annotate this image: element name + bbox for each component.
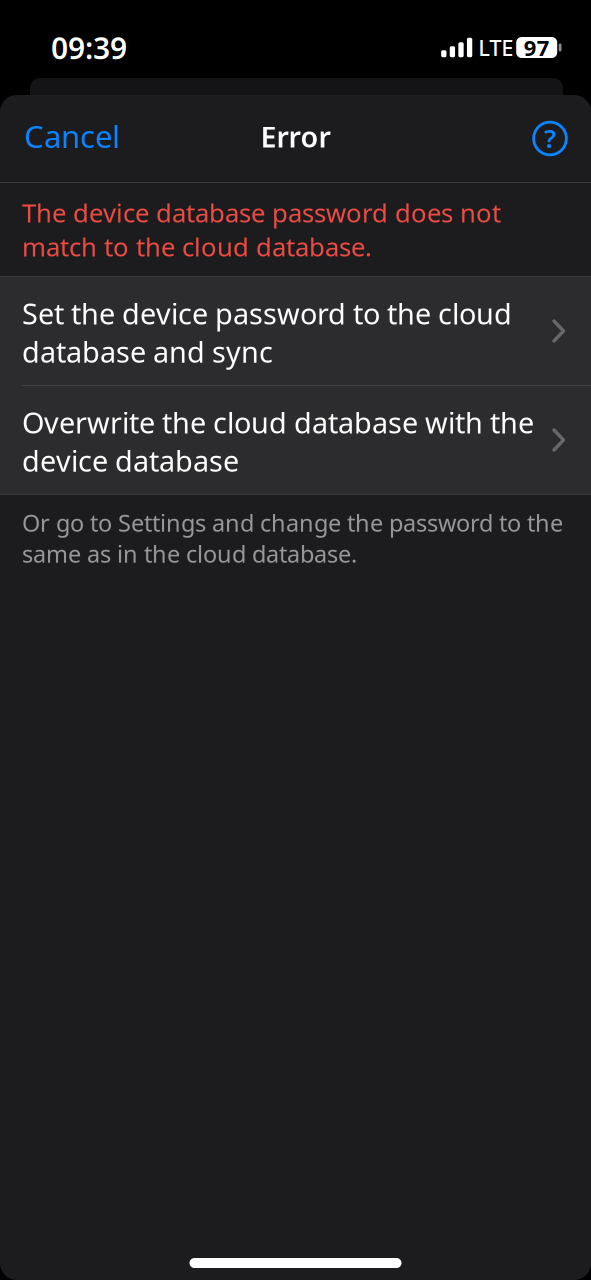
staticText: The device database password does not ma… — [22, 195, 501, 264]
staticText: ? — [544, 121, 556, 155]
button[interactable]: Help — [528, 116, 572, 160]
staticText: 09:39 — [51, 28, 127, 67]
staticText: 97 — [524, 33, 550, 62]
button[interactable]: Cancel — [24, 108, 120, 169]
staticText: Error — [260, 117, 330, 156]
staticText: Overwrite the cloud database with the de… — [22, 403, 534, 480]
staticText: Cancel — [24, 115, 120, 157]
staticText: Or go to Settings and change the passwor… — [22, 507, 563, 569]
staticText: LTE — [478, 33, 513, 62]
button[interactable]: Set the device password to the cloud dat… — [0, 277, 591, 385]
button[interactable]: Overwrite the cloud database with the de… — [0, 386, 591, 494]
staticText: Set the device password to the cloud dat… — [22, 294, 512, 371]
